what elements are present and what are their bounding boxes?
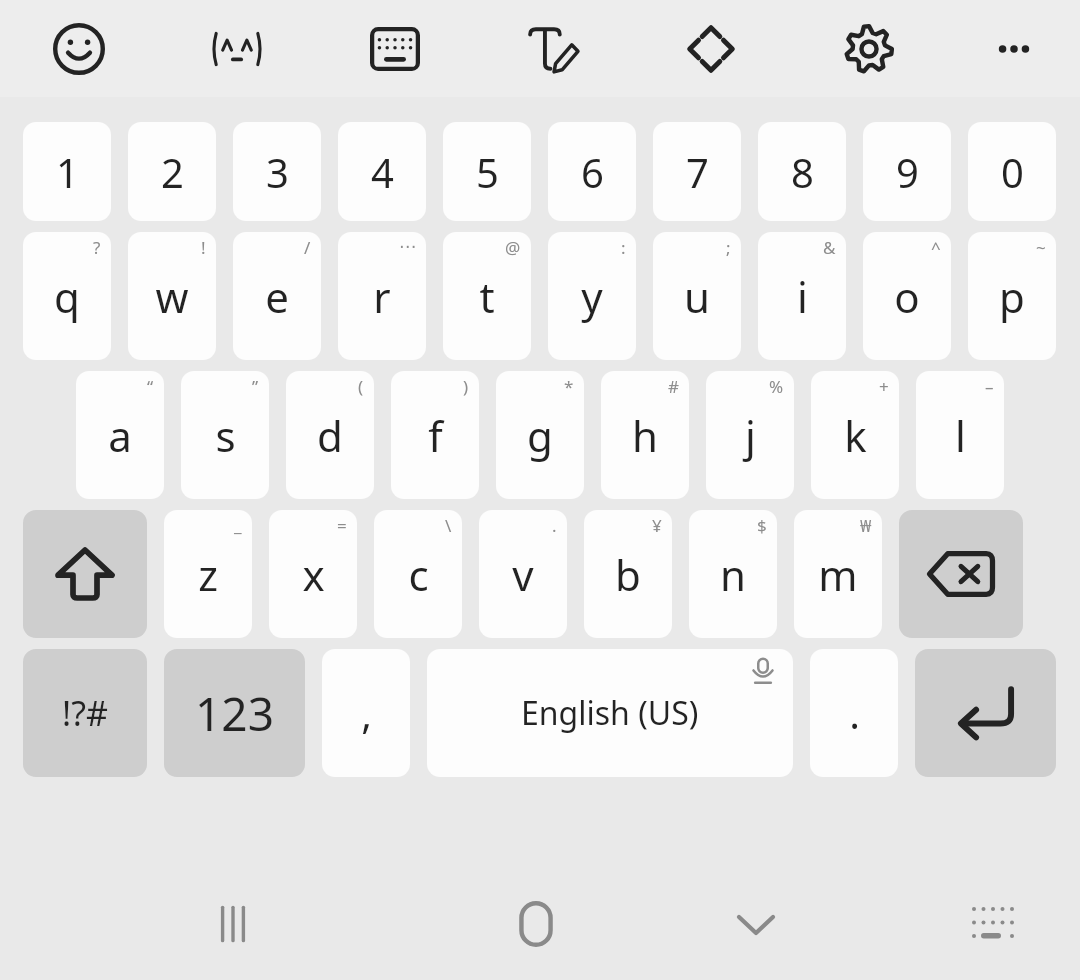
button[interactable]: 6 — [548, 122, 636, 221]
button[interactable]: Kaomoji — [158, 0, 316, 97]
staticText: w — [155, 268, 189, 325]
button[interactable]: Recents — [0, 868, 466, 980]
staticText: * — [564, 375, 574, 398]
staticText: j — [745, 407, 756, 464]
button[interactable]: 4 — [338, 122, 426, 221]
staticText: ⋯ — [399, 236, 416, 256]
staticText: ₩ — [860, 514, 872, 537]
button[interactable]: a — [76, 371, 164, 499]
staticText: . — [552, 514, 557, 537]
staticText: p — [999, 268, 1025, 325]
button[interactable]: 0 — [968, 122, 1056, 221]
staticText: / — [304, 236, 311, 259]
button[interactable]: b — [584, 510, 672, 638]
button[interactable]: x — [269, 510, 357, 638]
button[interactable]: f — [391, 371, 479, 499]
button[interactable]: Settings — [790, 0, 948, 97]
button[interactable]: 8 — [758, 122, 846, 221]
button[interactable]: 9 — [863, 122, 951, 221]
button[interactable]: p — [968, 232, 1056, 360]
staticText: o — [894, 268, 920, 325]
button[interactable]: More options — [948, 0, 1080, 97]
staticText: f — [428, 407, 443, 464]
staticText: 2 — [161, 145, 184, 199]
staticText: y — [581, 268, 603, 325]
button[interactable]: o — [863, 232, 951, 360]
button[interactable]: 1 — [23, 122, 111, 221]
staticText: ; — [726, 236, 731, 259]
button[interactable]: 5 — [443, 122, 531, 221]
button[interactable]: Backspace — [899, 510, 1023, 638]
button[interactable]: j — [706, 371, 794, 499]
button[interactable]: , — [322, 649, 410, 777]
button[interactable]: i — [758, 232, 846, 360]
staticText: h — [632, 407, 658, 464]
button[interactable]: t — [443, 232, 531, 360]
staticText: _ — [234, 514, 242, 537]
button[interactable]: Move keyboard — [632, 0, 790, 97]
staticText: e — [265, 268, 289, 325]
button[interactable]: m — [794, 510, 882, 638]
staticText: m — [818, 546, 858, 603]
button[interactable]: 2 — [128, 122, 216, 221]
button[interactable]: h — [601, 371, 689, 499]
staticText: 6 — [581, 145, 604, 199]
button[interactable]: d — [286, 371, 374, 499]
staticText: ? — [93, 236, 101, 259]
staticText: @ — [505, 236, 521, 259]
staticText: % — [769, 375, 784, 398]
staticText: k — [844, 407, 867, 464]
button[interactable]: s — [181, 371, 269, 499]
staticText: 1 — [56, 145, 79, 199]
button[interactable]: q — [23, 232, 111, 360]
staticText: \ — [445, 514, 452, 537]
staticText: x — [302, 546, 325, 603]
button[interactable]: 3 — [233, 122, 321, 221]
button[interactable]: Space, English (US) — [427, 649, 793, 777]
button[interactable]: Emoji — [0, 0, 158, 97]
button[interactable]: Switch keyboard — [906, 868, 1080, 980]
button[interactable]: Enter — [915, 649, 1056, 777]
button[interactable]: k — [811, 371, 899, 499]
button[interactable]: Handwriting — [474, 0, 632, 97]
staticText: ( — [358, 375, 364, 398]
staticText: 123 — [195, 682, 274, 745]
staticText: g — [527, 407, 553, 464]
staticText: + — [879, 375, 889, 398]
staticText: l — [955, 407, 966, 464]
staticText: ” — [252, 375, 259, 398]
button[interactable]: l — [916, 371, 1004, 499]
button[interactable]: Shift — [23, 510, 147, 638]
button[interactable]: !?# — [23, 649, 147, 777]
staticText: ^ — [931, 236, 941, 259]
button[interactable]: w — [128, 232, 216, 360]
button[interactable]: e — [233, 232, 321, 360]
staticText: d — [317, 407, 343, 464]
staticText: 7 — [686, 145, 709, 199]
staticText: # — [668, 375, 679, 398]
button[interactable]: Keyboard modes — [316, 0, 474, 97]
staticText: 4 — [371, 145, 394, 199]
button[interactable]: Hide keyboard — [606, 868, 906, 980]
staticText: 9 — [896, 145, 919, 199]
staticText: t — [479, 268, 495, 325]
button[interactable]: g — [496, 371, 584, 499]
button[interactable]: 7 — [653, 122, 741, 221]
button[interactable]: n — [689, 510, 777, 638]
staticText: English (US) — [521, 691, 699, 735]
staticText: . — [849, 686, 860, 740]
staticText: & — [823, 236, 836, 259]
button[interactable]: Home — [466, 868, 606, 980]
staticText: b — [615, 546, 641, 603]
button[interactable]: c — [374, 510, 462, 638]
button[interactable]: z — [164, 510, 252, 638]
staticText: n — [720, 546, 746, 603]
button[interactable]: u — [653, 232, 741, 360]
button[interactable]: . — [810, 649, 898, 777]
staticText: ! — [201, 236, 206, 259]
button[interactable]: v — [479, 510, 567, 638]
button[interactable]: y — [548, 232, 636, 360]
button[interactable]: r — [338, 232, 426, 360]
staticText: , — [361, 686, 372, 740]
button[interactable]: 123 — [164, 649, 305, 777]
